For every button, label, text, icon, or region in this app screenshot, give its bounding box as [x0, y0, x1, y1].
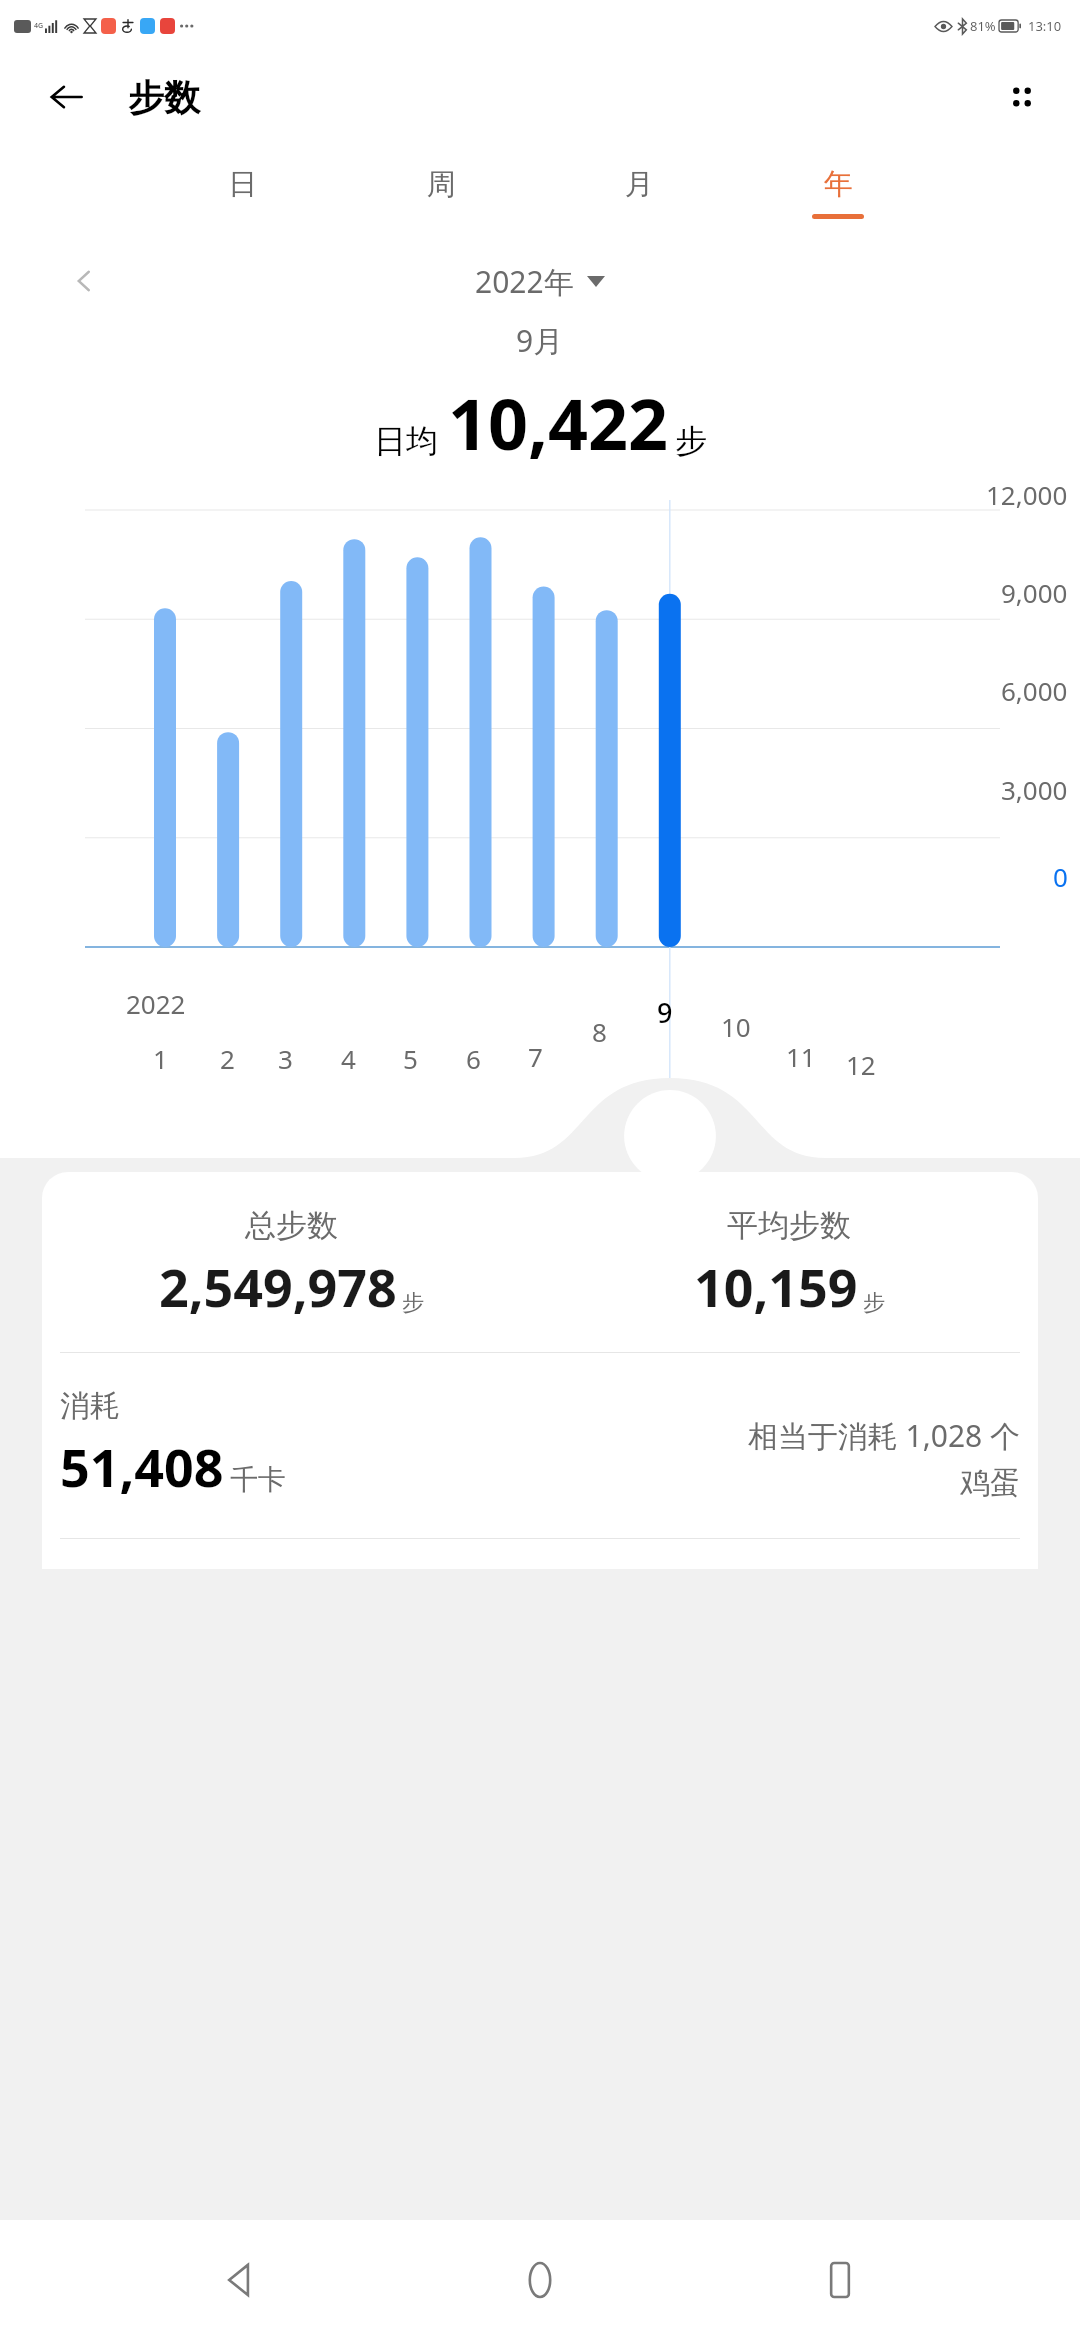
staticText: 平均步数 — [727, 1206, 851, 1245]
staticText: 4 — [341, 1041, 356, 1076]
button[interactable]: 年 — [806, 166, 870, 219]
staticText: 13:10 — [1028, 17, 1062, 35]
staticText: 81% — [970, 17, 996, 35]
staticText: 11 — [786, 1039, 816, 1074]
staticText: 10 — [721, 1009, 751, 1044]
staticText: 7 — [528, 1039, 543, 1074]
staticText: 3,000 — [1001, 772, 1068, 807]
staticText: 1 — [153, 1041, 168, 1076]
button[interactable]: 日 — [210, 166, 274, 219]
staticText: 12,000 — [986, 477, 1068, 512]
button[interactable]: 上一年 — [58, 255, 110, 307]
staticText: 日均 — [374, 421, 438, 461]
staticText: 步数 — [128, 75, 200, 120]
staticText: 日 — [228, 166, 257, 203]
staticText: 6,000 — [1001, 673, 1068, 708]
staticText: 消耗 — [60, 1387, 120, 1425]
staticText: 2,549,978 — [159, 1251, 397, 1322]
staticText: 8 — [592, 1014, 607, 1049]
button[interactable]: 最近任务 — [780, 2220, 900, 2340]
staticText: 千卡 — [230, 1462, 286, 1497]
staticText: 2022年 — [475, 261, 574, 302]
button[interactable]: 周 — [409, 166, 473, 219]
button[interactable]: 返回 — [38, 69, 94, 125]
staticText: 5 — [403, 1041, 418, 1076]
staticText: 10,422 — [448, 375, 669, 470]
staticText: 51,408 — [60, 1431, 224, 1502]
staticText: 月 — [625, 166, 654, 203]
button[interactable]: 更多选项 — [994, 69, 1050, 125]
button[interactable]: 主屏幕 — [480, 2220, 600, 2340]
staticText: 相当于消耗 1,028 个 鸡蛋 — [747, 1415, 1020, 1502]
staticText: 10,159 — [694, 1251, 858, 1322]
staticText: 9 — [657, 994, 673, 1031]
staticText: 12 — [846, 1047, 876, 1082]
staticText: 6 — [466, 1041, 481, 1076]
staticText: 步 — [675, 421, 707, 461]
staticText: 步 — [863, 1289, 885, 1317]
staticText: 3 — [278, 1041, 293, 1076]
staticText: 2022 — [126, 986, 186, 1021]
staticText: 总步数 — [245, 1206, 338, 1245]
staticText: 年 — [824, 166, 853, 203]
staticText: 0 — [1053, 859, 1068, 894]
button[interactable]: 返回 — [180, 2220, 300, 2340]
button[interactable]: 2022年 — [475, 261, 605, 302]
button[interactable]: 月 — [607, 166, 671, 219]
button[interactable]: 平均步数 — [540, 1206, 1038, 1322]
staticText: 9月 — [516, 320, 564, 361]
button[interactable]: 总步数 — [42, 1206, 540, 1322]
staticText: 4G — [34, 21, 44, 31]
staticText: 2 — [220, 1041, 235, 1076]
staticText: 周 — [427, 166, 456, 203]
staticText: 步 — [402, 1289, 424, 1317]
staticText: 9,000 — [1001, 575, 1068, 610]
